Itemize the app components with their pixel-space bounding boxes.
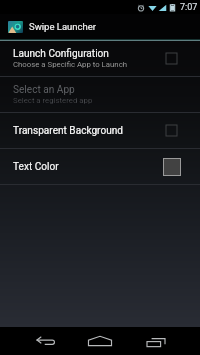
button[interactable]: Select an App xyxy=(0,77,200,112)
staticText: 7:07 xyxy=(180,2,198,13)
staticText: Select an App xyxy=(13,84,75,96)
button[interactable]: Transparent Background xyxy=(0,113,200,148)
button[interactable]: Launch Configuration xyxy=(0,41,200,76)
staticText: Select a registered app xyxy=(13,96,93,105)
button[interactable]: Swipe Launcher xyxy=(0,14,200,39)
staticText: Transparent Background xyxy=(13,125,124,137)
staticText: Choose a Specific App to Launch xyxy=(13,60,128,69)
button[interactable]: Text Color xyxy=(0,149,200,184)
button[interactable]: Back xyxy=(31,327,59,354)
staticText: Swipe Launcher xyxy=(29,21,97,32)
button[interactable]: Recent apps xyxy=(142,327,170,354)
staticText: Text Color xyxy=(13,161,59,173)
button[interactable]: Home xyxy=(86,327,114,354)
staticText: Launch Configuration xyxy=(13,48,109,60)
